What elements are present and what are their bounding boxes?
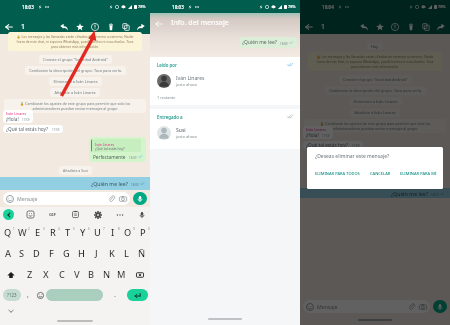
- button[interactable]: Delete: [104, 20, 118, 34]
- button[interactable]: R: [45, 222, 60, 243]
- button[interactable]: Delete: [404, 20, 418, 34]
- button[interactable]: Star: [73, 20, 87, 34]
- staticText: Z: [27, 268, 33, 281]
- button[interactable]: C: [54, 264, 69, 285]
- staticText: Perfectamente: [93, 154, 126, 160]
- button[interactable]: P: [135, 222, 150, 243]
- staticText: Añadiste a Iván Linares: [354, 110, 396, 115]
- staticText: 18:00: [280, 42, 288, 46]
- staticText: 3: [43, 227, 45, 231]
- button[interactable]: More options: [114, 209, 125, 220]
- button[interactable]: CANCELAR: [370, 171, 391, 176]
- button[interactable]: Emoji: [35, 285, 46, 305]
- button[interactable]: Forward: [434, 20, 448, 34]
- button[interactable]: ELIMINAR PARA TODOS: [315, 171, 360, 176]
- button[interactable]: Info: [388, 20, 402, 34]
- button[interactable]: Info: [88, 20, 102, 34]
- staticText: W: [18, 226, 27, 239]
- button[interactable]: J: [89, 243, 104, 264]
- staticText: A: [5, 247, 12, 260]
- staticText: 17:59: [322, 134, 330, 138]
- button[interactable]: F: [44, 243, 59, 264]
- button[interactable]: Reply: [357, 20, 371, 34]
- button[interactable]: Back: [302, 20, 315, 33]
- staticText: U: [94, 226, 101, 239]
- button[interactable]: L: [119, 243, 134, 264]
- button[interactable]: ELIMINAR PARA MÍ: [400, 171, 437, 176]
- button[interactable]: Forward: [134, 20, 148, 34]
- button[interactable]: I: [105, 222, 120, 243]
- button[interactable]: Space: [46, 289, 103, 301]
- staticText: Creaste el grupo "Sociedad Android": [343, 77, 408, 82]
- button[interactable]: Enter: [127, 289, 148, 301]
- staticText: 78%: [438, 4, 446, 9]
- button[interactable]: Copy: [119, 20, 133, 34]
- button[interactable]: Voice message: [133, 192, 147, 205]
- button[interactable]: D: [29, 243, 44, 264]
- button[interactable]: A: [1, 243, 15, 264]
- button[interactable]: Y: [75, 222, 90, 243]
- staticText: 18:00: [131, 183, 139, 187]
- staticText: Mensaje: [317, 303, 338, 310]
- button[interactable]: S: [15, 243, 29, 264]
- staticText: CANCELAR: [370, 171, 391, 176]
- staticText: C: [59, 268, 65, 281]
- button[interactable]: O: [120, 222, 135, 243]
- staticText: Eliminaste a Iván Linares: [53, 79, 98, 84]
- button[interactable]: W: [15, 222, 30, 243]
- staticText: ¿Qué tal estás hoy?: [306, 142, 349, 148]
- button[interactable]: Mensaje: [303, 300, 430, 313]
- button[interactable]: ,: [21, 285, 35, 305]
- button[interactable]: K: [104, 243, 119, 264]
- button[interactable]: U: [90, 222, 105, 243]
- staticText: 🔒 Cambiaste los ajustes de este grupo pa…: [308, 121, 442, 131]
- button[interactable]: Settings: [92, 209, 103, 220]
- staticText: 18:00: [431, 193, 439, 197]
- button[interactable]: Back: [152, 17, 165, 30]
- button[interactable]: ?123: [3, 289, 21, 301]
- button[interactable]: Clipboard: [70, 209, 81, 220]
- button[interactable]: ¿Quién me lee?: [300, 188, 450, 198]
- staticText: Hoy: [371, 44, 379, 49]
- button[interactable]: ¿Quién me lee?: [0, 177, 150, 190]
- staticText: justo ahora: [176, 82, 197, 87]
- staticText: D: [33, 247, 40, 260]
- staticText: P: [140, 226, 146, 239]
- staticText: O: [124, 226, 132, 239]
- button[interactable]: X: [38, 264, 54, 285]
- staticText: H: [78, 247, 85, 260]
- button[interactable]: Q: [0, 222, 15, 243]
- button[interactable]: M: [114, 264, 129, 285]
- staticText: 2: [28, 227, 30, 231]
- button[interactable]: V: [69, 264, 84, 285]
- staticText: J: [95, 247, 98, 260]
- staticText: 1: [321, 22, 326, 32]
- button[interactable]: Backspace: [129, 264, 150, 285]
- button[interactable]: E: [30, 222, 45, 243]
- button[interactable]: B: [84, 264, 99, 285]
- staticText: 5: [73, 227, 75, 231]
- button[interactable]: Shift: [0, 264, 22, 285]
- staticText: 🔒 Los mensajes y las llamadas están cifr…: [313, 54, 437, 69]
- button[interactable]: .: [103, 285, 127, 305]
- button[interactable]: Stickers: [25, 209, 36, 220]
- button[interactable]: Back: [2, 20, 15, 33]
- button[interactable]: Z: [22, 264, 38, 285]
- staticText: 8: [118, 227, 120, 231]
- staticText: Q: [4, 226, 12, 239]
- button[interactable]: Copy: [419, 20, 433, 34]
- button[interactable]: G: [59, 243, 74, 264]
- button[interactable]: Voice message: [433, 300, 447, 313]
- button[interactable]: GIF: [47, 209, 58, 220]
- button[interactable]: Reply: [57, 20, 71, 34]
- button[interactable]: N: [99, 264, 114, 285]
- staticText: GIF: [49, 212, 56, 218]
- button[interactable]: Voice input: [136, 209, 147, 220]
- button[interactable]: Star: [373, 20, 387, 34]
- button[interactable]: Mensaje: [3, 192, 130, 205]
- button[interactable]: Hide keyboard: [7, 307, 15, 315]
- button[interactable]: H: [74, 243, 89, 264]
- button[interactable]: T: [60, 222, 75, 243]
- button[interactable]: Show toolbar: [3, 209, 14, 220]
- button[interactable]: Ñ: [134, 243, 149, 264]
